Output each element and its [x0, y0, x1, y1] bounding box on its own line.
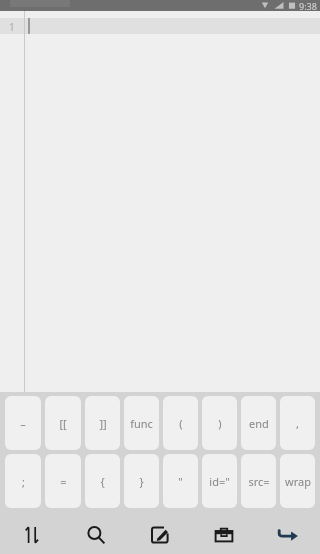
button[interactable]: – [5, 396, 41, 450]
staticText: src= [248, 474, 270, 489]
button[interactable]: [[ [45, 396, 81, 450]
button[interactable]: = [45, 454, 81, 508]
staticText: , [296, 416, 299, 431]
staticText: func [130, 416, 153, 431]
button[interactable]: ) [202, 396, 237, 450]
staticText: ; [22, 474, 25, 489]
button[interactable]: ( [163, 396, 198, 450]
staticText: ]] [99, 416, 107, 431]
button[interactable]: end [241, 396, 276, 450]
button[interactable]: id=" [202, 454, 237, 508]
staticText: { [100, 474, 105, 489]
staticText: = [60, 474, 67, 489]
button[interactable]: Search [64, 516, 128, 554]
button[interactable]: ]] [85, 396, 120, 450]
staticText: ( [179, 416, 183, 431]
staticText: id=" [209, 474, 230, 489]
button[interactable]: ; [5, 454, 41, 508]
button[interactable]: func [124, 396, 159, 450]
button[interactable]: " [163, 454, 198, 508]
staticText: } [139, 474, 144, 489]
button[interactable]: } [124, 454, 159, 508]
button[interactable]: wrap [280, 454, 315, 508]
button[interactable]: src= [241, 454, 276, 508]
button[interactable]: Edit [128, 516, 192, 554]
staticText: wrap [285, 474, 311, 489]
staticText: [[ [59, 416, 67, 431]
staticText: 9:38 [299, 0, 317, 11]
staticText: end [249, 416, 269, 431]
button[interactable]: , [280, 396, 315, 450]
button[interactable]: { [85, 454, 120, 508]
staticText: – [20, 416, 26, 431]
staticText: ) [218, 416, 222, 431]
button[interactable]: Run [256, 516, 320, 554]
staticText: " [178, 474, 183, 489]
button[interactable]: Projects [192, 516, 256, 554]
staticText: 1 [9, 20, 15, 34]
button[interactable]: Sort up and down [0, 516, 64, 554]
